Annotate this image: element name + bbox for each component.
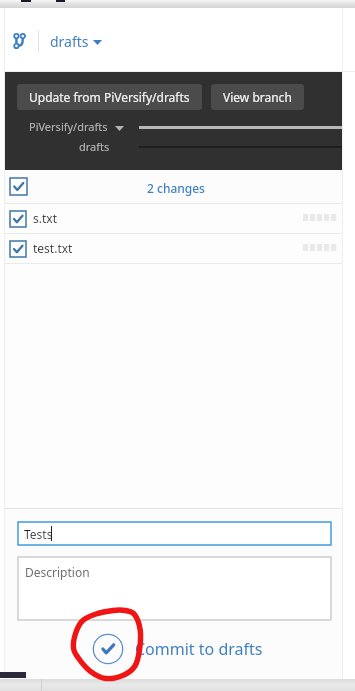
staticText: PiVersify/drafts (29, 119, 108, 134)
button[interactable]: Tests (18, 522, 331, 545)
staticText: View branch (223, 89, 292, 105)
button[interactable]: s.txt (5, 204, 342, 234)
button[interactable]: Description (18, 557, 331, 620)
staticText: Update from PiVersify/drafts (29, 89, 190, 105)
button[interactable]: Update from PiVersify/drafts (17, 84, 202, 110)
staticText: drafts (50, 32, 89, 51)
staticText: Description (25, 564, 90, 580)
staticText: 2 changes (147, 180, 205, 196)
button[interactable]: drafts (14, 28, 102, 54)
button[interactable]: 2 changes (5, 170, 342, 204)
staticText: s.txt (33, 210, 57, 226)
staticText: drafts (79, 139, 110, 154)
button[interactable]: test.txt (5, 234, 342, 264)
staticText: Commit to drafts (135, 638, 263, 660)
staticText: Tests (24, 526, 53, 542)
button[interactable]: Commit to drafts (93, 634, 263, 664)
staticText: test.txt (33, 240, 73, 256)
button[interactable]: View branch (211, 84, 304, 110)
